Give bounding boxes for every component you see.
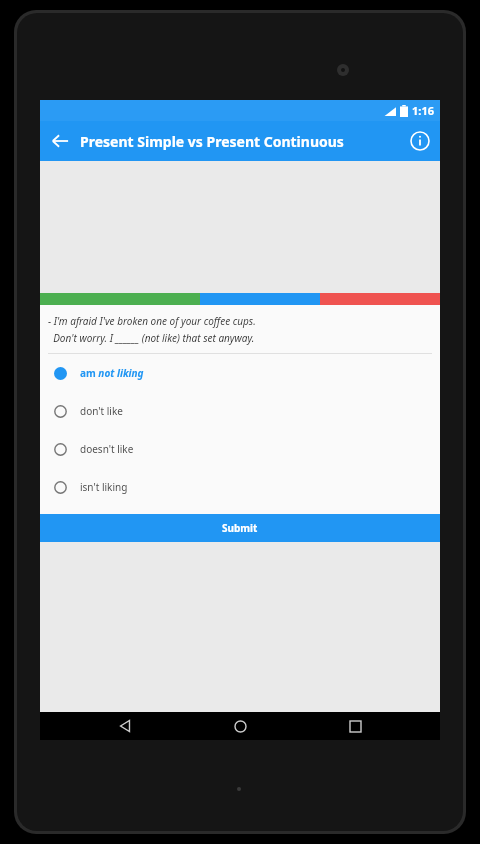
button[interactable]: Submit xyxy=(40,514,440,542)
button[interactable]: am not liking xyxy=(40,354,440,392)
staticText: am not liking xyxy=(80,366,144,380)
button[interactable]: isn't liking xyxy=(40,468,440,506)
staticText: Present Simple vs Present Continuous xyxy=(80,132,400,151)
button[interactable]: Back xyxy=(95,712,155,740)
staticText: 1:16 xyxy=(412,103,434,118)
staticText: isn't liking xyxy=(80,480,128,494)
button[interactable]: Info xyxy=(400,121,440,161)
staticText: Don't worry. I ______ (not like) that se… xyxy=(48,331,255,345)
staticText: doesn't like xyxy=(80,442,134,456)
staticText: don't like xyxy=(80,404,123,418)
button[interactable]: don't like xyxy=(40,392,440,430)
button[interactable]: Home xyxy=(210,712,270,740)
staticText: - I'm afraid I've broken one of your cof… xyxy=(48,314,256,328)
button[interactable]: Recent apps xyxy=(325,712,385,740)
button[interactable]: doesn't like xyxy=(40,430,440,468)
button[interactable]: Back xyxy=(40,121,80,161)
staticText: Submit xyxy=(222,521,258,535)
